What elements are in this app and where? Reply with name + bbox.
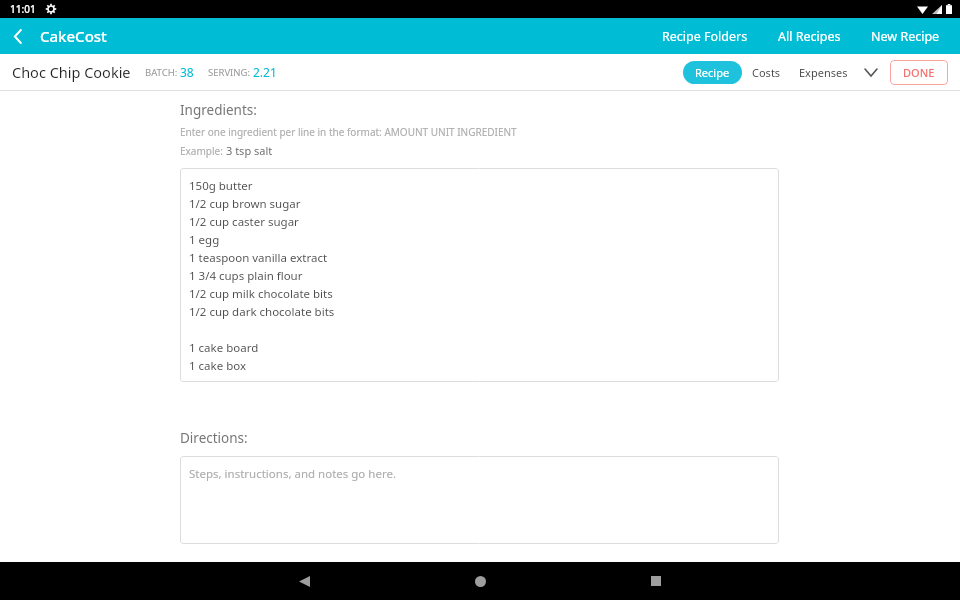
staticText: 38	[180, 64, 194, 80]
staticText: New Recipe	[871, 28, 940, 45]
staticText: CakeCost	[40, 26, 107, 46]
button[interactable]: Back	[280, 562, 328, 600]
button[interactable]: Recipe Folders	[656, 20, 754, 53]
button[interactable]: Steps, instructions, and notes go here.	[180, 456, 779, 544]
staticText: 1 teaspoon vanilla extract	[189, 250, 328, 266]
button[interactable]: More options	[856, 57, 886, 87]
staticText: 1 cake box	[189, 358, 247, 374]
staticText: Ingredients:	[180, 101, 257, 119]
staticText: Choc Chip Cookie	[12, 62, 131, 82]
staticText: 150g butter	[189, 178, 253, 194]
staticText: 1/2 cup dark chocolate bits	[189, 304, 335, 320]
staticText: 1/2 cup milk chocolate bits	[189, 286, 333, 302]
staticText: 11:01	[10, 2, 36, 16]
staticText: Recipe	[695, 65, 730, 80]
staticText: Steps, instructions, and notes go here.	[189, 466, 396, 482]
staticText: 1 egg	[189, 232, 220, 248]
staticText: 1 3/4 cups plain flour	[189, 268, 303, 284]
staticText: Costs	[752, 65, 781, 80]
staticText: SERVING:	[208, 66, 253, 79]
staticText: 2.21	[253, 64, 277, 80]
button[interactable]: Back	[0, 18, 36, 54]
button[interactable]: Costs	[742, 59, 791, 86]
button[interactable]: Expenses	[791, 59, 856, 86]
button[interactable]: 150g butter	[180, 168, 779, 382]
button[interactable]: Recent apps	[632, 562, 680, 600]
staticText: Directions:	[180, 429, 248, 447]
staticText: 3 tsp salt	[226, 143, 273, 158]
button[interactable]: DONE	[890, 60, 948, 85]
staticText: 1/2 cup caster sugar	[189, 214, 299, 230]
staticText: BATCH:	[145, 66, 180, 79]
button[interactable]: Home	[456, 562, 504, 600]
staticText: Expenses	[799, 65, 848, 80]
staticText: DONE	[903, 65, 935, 80]
button[interactable]: New Recipe	[865, 20, 946, 53]
staticText: 1/2 cup brown sugar	[189, 196, 301, 212]
button[interactable]: All Recipes	[772, 20, 847, 53]
staticText: 1 cake board	[189, 340, 259, 356]
button[interactable]: Recipe	[683, 61, 742, 84]
staticText: Recipe Folders	[662, 28, 748, 45]
staticText: Enter one ingredient per line in the for…	[180, 125, 517, 139]
staticText: All Recipes	[778, 28, 841, 45]
staticText: Example:	[180, 144, 226, 158]
